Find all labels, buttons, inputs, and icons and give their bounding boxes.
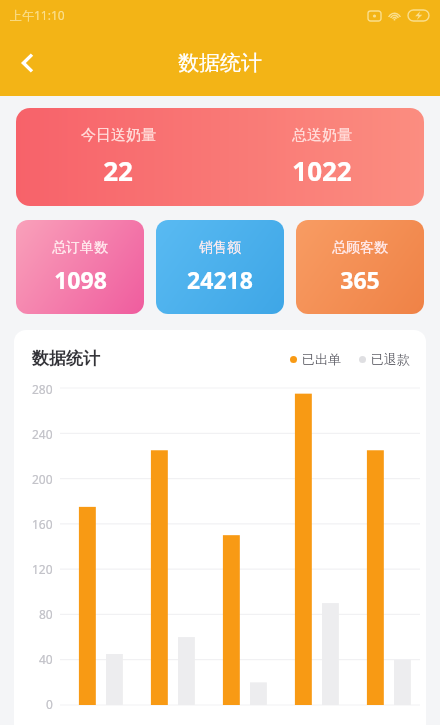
button[interactable]: Back xyxy=(4,39,52,87)
button[interactable]: 今日送奶量 xyxy=(16,108,424,206)
button[interactable]: 总顾客数 xyxy=(296,220,424,314)
staticText: 1098 xyxy=(54,264,107,295)
staticText: 上午11:10 xyxy=(10,7,65,23)
staticText: 24218 xyxy=(187,264,253,295)
staticText: 0 xyxy=(46,696,53,712)
button[interactable]: 总订单数 xyxy=(16,220,144,314)
staticText: 22 xyxy=(103,153,133,188)
staticText: 1022 xyxy=(292,153,352,188)
staticText: 今日送奶量 xyxy=(81,126,156,145)
button[interactable]: 销售额 xyxy=(156,220,284,314)
button[interactable]: 已出单 xyxy=(290,349,341,369)
staticText: 总订单数 xyxy=(52,239,108,257)
button[interactable]: 已退款 xyxy=(359,349,410,369)
staticText: 160 xyxy=(32,516,53,532)
staticText: 数据统计 xyxy=(32,348,100,369)
staticText: 销售额 xyxy=(199,239,241,257)
staticText: 200 xyxy=(32,471,53,487)
staticText: 40 xyxy=(39,651,53,667)
staticText: 数据统计 xyxy=(178,50,262,76)
staticText: 80 xyxy=(39,606,53,622)
staticText: 已退款 xyxy=(371,351,410,367)
staticText: 总送奶量 xyxy=(292,126,352,145)
staticText: 280 xyxy=(32,381,53,397)
staticText: 120 xyxy=(32,561,53,577)
staticText: 240 xyxy=(32,426,53,442)
staticText: 已出单 xyxy=(302,351,341,367)
staticText: 总顾客数 xyxy=(332,239,388,257)
staticText: 365 xyxy=(340,264,380,295)
